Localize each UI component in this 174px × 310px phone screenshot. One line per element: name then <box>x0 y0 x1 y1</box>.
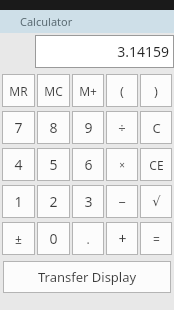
staticText: 9 <box>84 118 93 137</box>
staticText: + <box>118 229 127 248</box>
staticText: 2 <box>49 192 58 211</box>
staticText: 5 <box>49 155 58 174</box>
staticText: 4 <box>14 155 23 174</box>
staticText: − <box>118 193 126 211</box>
staticText: ) <box>154 82 158 100</box>
button[interactable]: 6 <box>72 148 104 181</box>
button[interactable]: MR <box>2 74 35 107</box>
staticText: 0 <box>49 229 58 248</box>
staticText: = <box>153 231 160 247</box>
button[interactable]: CE <box>140 148 172 181</box>
button[interactable]: − <box>106 185 138 218</box>
staticText: CE <box>149 157 164 173</box>
staticText: 3.14159 <box>117 42 169 61</box>
staticText: ( <box>120 82 124 100</box>
staticText: MR <box>9 83 28 99</box>
button[interactable]: ÷ <box>106 111 138 144</box>
button[interactable]: 4 <box>2 148 35 181</box>
button[interactable]: C <box>140 111 172 144</box>
button[interactable]: 9 <box>72 111 104 144</box>
button[interactable]: Transfer Display <box>3 261 171 293</box>
button[interactable]: 7 <box>2 111 35 144</box>
staticText: Calculator <box>20 14 73 29</box>
staticText: × <box>119 158 125 172</box>
button[interactable]: + <box>106 222 138 255</box>
button[interactable]: = <box>140 222 172 255</box>
staticText: 6 <box>84 155 93 174</box>
button[interactable]: ) <box>140 74 172 107</box>
staticText: 3 <box>84 192 93 211</box>
staticText: M+ <box>79 83 97 99</box>
button[interactable]: 3 <box>72 185 104 218</box>
staticText: C <box>152 119 161 137</box>
button[interactable]: √ <box>140 185 172 218</box>
staticText: 8 <box>49 118 58 137</box>
button[interactable]: 0 <box>37 222 70 255</box>
staticText: MC <box>44 83 63 99</box>
staticText: ± <box>15 231 22 247</box>
button[interactable]: 8 <box>37 111 70 144</box>
staticText: 7 <box>14 118 23 137</box>
button[interactable]: ± <box>2 222 35 255</box>
button[interactable]: MC <box>37 74 70 107</box>
button[interactable]: × <box>106 148 138 181</box>
button[interactable]: . <box>72 222 104 255</box>
button[interactable]: 5 <box>37 148 70 181</box>
staticText: . <box>86 231 90 247</box>
staticText: 1 <box>14 192 23 211</box>
staticText: ÷ <box>118 119 126 137</box>
button[interactable]: M+ <box>72 74 104 107</box>
staticText: Transfer Display <box>38 268 137 286</box>
button[interactable]: 2 <box>37 185 70 218</box>
button[interactable]: ( <box>106 74 138 107</box>
staticText: √ <box>152 194 161 209</box>
button[interactable]: 1 <box>2 185 35 218</box>
